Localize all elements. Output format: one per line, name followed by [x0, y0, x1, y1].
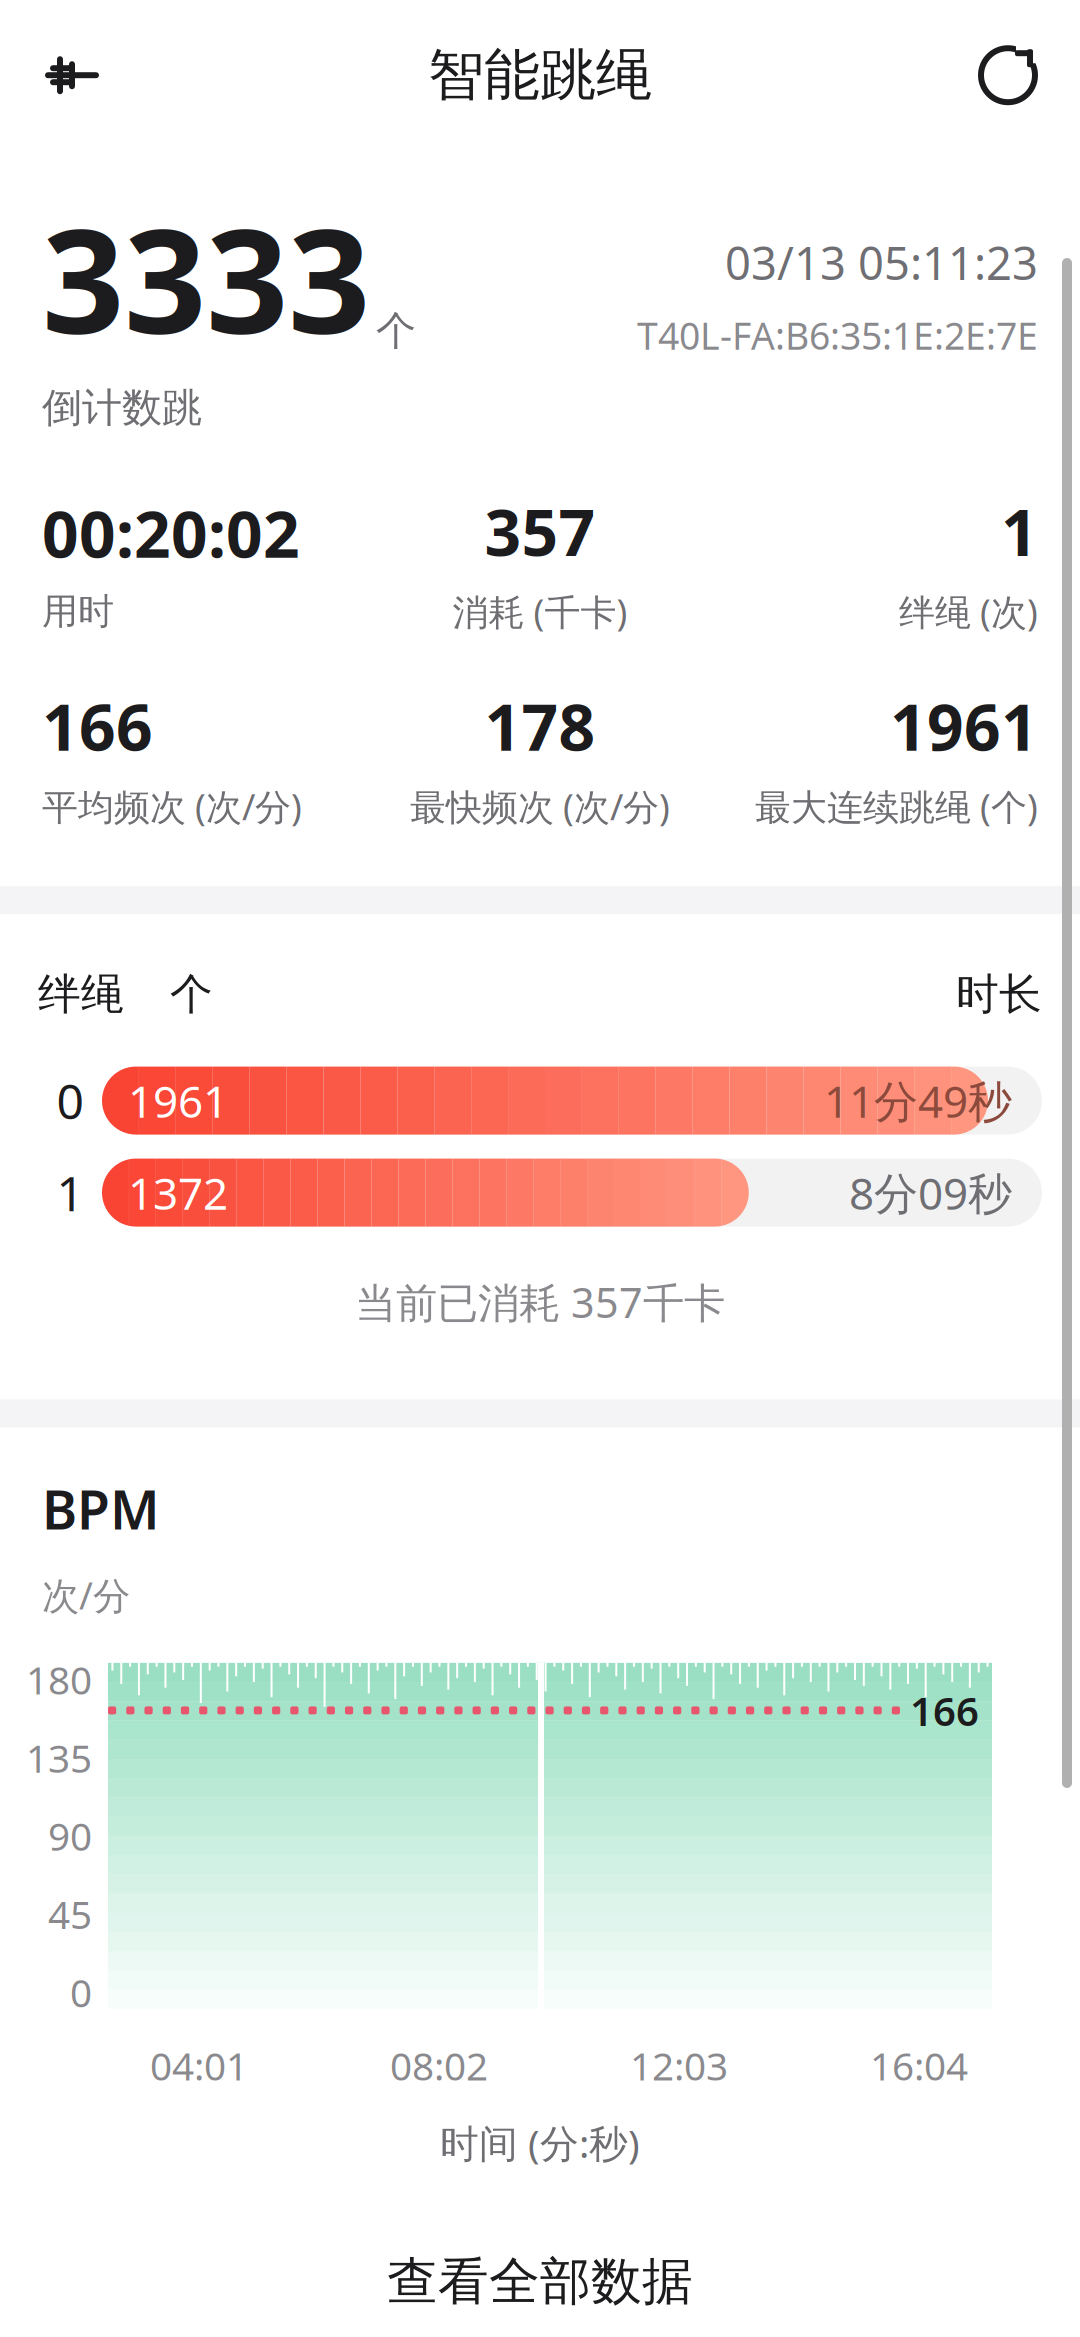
staticText: 0 — [70, 1966, 92, 2018]
staticText: 3333 — [42, 182, 370, 373]
staticText: 绊绳 — [38, 968, 124, 1021]
staticText: 00:20:02 — [42, 490, 300, 575]
staticText: 16:04 — [870, 2040, 968, 2091]
staticText: 时长 — [956, 968, 1042, 1021]
staticText: 12:03 — [630, 2040, 728, 2091]
staticText: 用时 — [42, 589, 114, 634]
staticText: 90 — [48, 1810, 92, 1861]
staticText: 03/13 05:11:23 — [725, 232, 1038, 292]
staticText: BPM — [42, 1473, 160, 1544]
staticText: 04:01 — [150, 2040, 248, 2091]
staticText: 166 — [910, 1684, 979, 1737]
staticText: 次/分 — [42, 1570, 130, 1620]
staticText: 最快频次 (次/分) — [410, 782, 670, 830]
staticText: 1372 — [128, 1163, 228, 1222]
staticText: 178 — [484, 683, 595, 768]
button[interactable]: 查看全部数据 — [0, 2221, 1080, 2337]
staticText: 1 — [1001, 489, 1038, 574]
staticText: 08:02 — [390, 2040, 488, 2091]
staticText: 180 — [26, 1654, 92, 1705]
staticText: 平均频次 (次/分) — [42, 782, 302, 830]
staticText: 1961 — [890, 683, 1038, 768]
staticText: 1961 — [128, 1071, 228, 1130]
staticText: 时间 (分:秒) — [440, 2117, 640, 2168]
staticText: 消耗 (千卡) — [452, 588, 627, 635]
staticText: 查看全部数据 — [387, 2251, 693, 2313]
staticText: 倒计数跳 — [42, 383, 202, 432]
staticText: T40L-FA:B6:35:1E:2E:7E — [637, 310, 1038, 360]
staticText: 8分09秒 — [849, 1163, 1012, 1222]
staticText: 绊绳 (次) — [899, 588, 1038, 635]
staticText: 当前已消耗 357千卡 — [355, 1275, 725, 1329]
staticText: 357 — [484, 489, 595, 574]
staticText: 个 — [376, 306, 416, 355]
staticText: 智能跳绳 — [428, 41, 652, 110]
staticText: 最大连续跳绳 (个) — [755, 782, 1038, 830]
staticText: 个 — [170, 968, 213, 1021]
button[interactable]: Back — [30, 33, 114, 117]
staticText: 1 — [56, 1161, 83, 1224]
staticText: 45 — [48, 1888, 92, 1940]
button[interactable]: Refresh — [966, 33, 1050, 117]
staticText: 166 — [42, 683, 153, 768]
staticText: 0 — [56, 1069, 83, 1132]
staticText: 11分49秒 — [824, 1071, 1012, 1130]
staticText: 135 — [26, 1732, 92, 1783]
